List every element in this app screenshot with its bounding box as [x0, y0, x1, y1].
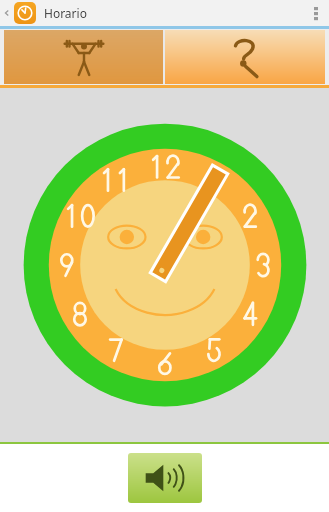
- button[interactable]: Play sound: [128, 453, 202, 503]
- button[interactable]: More options: [303, 0, 329, 26]
- button[interactable]: Help tab: [165, 30, 325, 84]
- button[interactable]: Clock showing seven o'clock: [20, 120, 310, 410]
- button[interactable]: App icon: [14, 2, 36, 24]
- button[interactable]: Exercise tab: [4, 30, 163, 84]
- button[interactable]: Back: [0, 0, 14, 26]
- staticText: Horario: [44, 5, 87, 21]
